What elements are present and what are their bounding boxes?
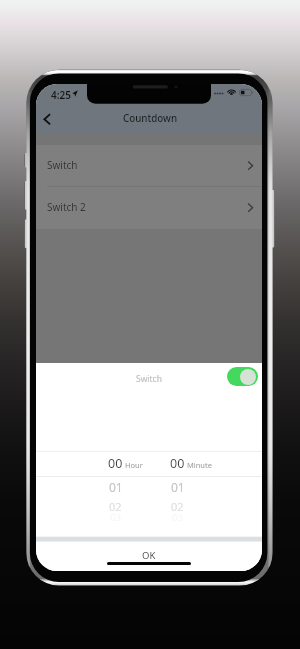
staticText: 02: [171, 499, 184, 514]
staticText: 02: [109, 499, 122, 514]
staticText: 01: [171, 479, 185, 495]
staticText: Switch: [136, 373, 162, 385]
staticText: OK: [142, 549, 156, 562]
staticText: Switch: [47, 158, 78, 172]
button[interactable]: Switch 2: [36, 187, 262, 229]
staticText: 01: [109, 479, 123, 495]
button[interactable]: Switch toggle: [227, 367, 258, 386]
staticText: 00: [170, 455, 185, 472]
staticText: Hour: [125, 460, 143, 470]
staticText: Minute: [187, 460, 212, 470]
staticText: 4:25: [51, 88, 71, 102]
staticText: Switch 2: [47, 200, 86, 214]
button[interactable]: OK: [36, 547, 262, 563]
staticText: Countdown: [123, 112, 178, 125]
staticText: 00: [108, 455, 123, 472]
button[interactable]: Switch: [36, 145, 262, 187]
button[interactable]: Back: [36, 104, 60, 133]
